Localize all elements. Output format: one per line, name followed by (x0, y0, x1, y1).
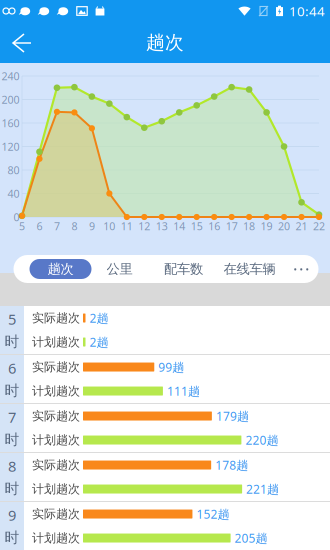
staticText: 计划趟次 (32, 433, 80, 447)
staticText: 时 (4, 431, 19, 449)
button[interactable]: 趟次 (29, 259, 91, 279)
button[interactable]: 在线车辆 (218, 259, 280, 279)
staticText: 实际趟次 (32, 458, 80, 472)
staticText: 22 (313, 219, 325, 233)
staticText: 15 (191, 219, 203, 233)
staticText: 计划趟次 (32, 335, 80, 349)
staticText: 2趟 (89, 310, 108, 326)
staticText: 200 (1, 92, 19, 107)
staticText: 178趟 (215, 457, 248, 473)
staticText: 实际趟次 (32, 409, 80, 423)
staticText: 6 (8, 358, 16, 378)
staticText: 11 (121, 219, 133, 233)
staticText: 7 (54, 219, 60, 233)
staticText: 5 (19, 219, 25, 233)
button[interactable]: 返回 (0, 22, 46, 63)
staticText: 17 (226, 219, 238, 233)
staticText: 99趟 (158, 359, 184, 375)
staticText: 在线车辆 (223, 261, 275, 277)
button[interactable]: 更多 (289, 259, 313, 279)
staticText: 16 (208, 219, 220, 233)
staticText: 实际趟次 (32, 360, 80, 374)
staticText: 111趟 (167, 383, 200, 399)
staticText: 179趟 (216, 408, 249, 424)
staticText: 80 (7, 163, 19, 177)
staticText: 5 (8, 309, 16, 329)
staticText: 160 (1, 116, 19, 130)
staticText: 公里 (106, 261, 132, 277)
staticText: 19 (261, 219, 273, 233)
staticText: 14 (173, 219, 185, 233)
staticText: 120 (1, 139, 19, 154)
staticText: 10 (103, 219, 115, 233)
staticText: 6 (36, 219, 42, 233)
staticText: 时 (4, 480, 19, 498)
staticText: 实际趟次 (32, 507, 80, 521)
button[interactable]: 9 (0, 502, 330, 550)
staticText: 9 (8, 505, 16, 525)
staticText: 240 (1, 69, 19, 83)
staticText: 40 (7, 186, 19, 201)
staticText: 9 (89, 219, 95, 233)
staticText: 220趟 (245, 432, 278, 448)
staticText: 205趟 (235, 530, 268, 546)
staticText: 趟次 (146, 31, 184, 54)
staticText: 计划趟次 (32, 482, 80, 496)
staticText: 20 (278, 219, 290, 233)
staticText: 21 (295, 219, 307, 233)
button[interactable]: 配车数 (155, 259, 211, 279)
staticText: 配车数 (164, 261, 203, 277)
staticText: 152趟 (196, 506, 229, 522)
button[interactable]: 7 (0, 404, 330, 452)
staticText: 计划趟次 (32, 531, 80, 545)
staticText: 8 (8, 456, 16, 476)
staticText: • • • (293, 263, 309, 275)
staticText: 18 (243, 219, 255, 233)
button[interactable]: 5 (0, 306, 330, 354)
button[interactable]: 6 (0, 355, 330, 403)
staticText: 计划趟次 (32, 384, 80, 398)
button[interactable]: 8 (0, 453, 330, 501)
staticText: 0 (13, 210, 19, 224)
staticText: 221趟 (246, 481, 279, 497)
staticText: 8 (71, 219, 77, 233)
staticText: 时 (4, 529, 19, 547)
staticText: 13 (156, 219, 168, 233)
button[interactable]: 公里 (94, 259, 144, 279)
staticText: 2趟 (89, 334, 108, 350)
staticText: 时 (4, 333, 19, 351)
staticText: 7 (8, 407, 16, 427)
staticText: 实际趟次 (32, 311, 80, 325)
staticText: 时 (4, 382, 19, 400)
staticText: 10:44 (289, 2, 325, 20)
staticText: 12 (138, 219, 150, 233)
staticText: 趟次 (47, 261, 73, 277)
